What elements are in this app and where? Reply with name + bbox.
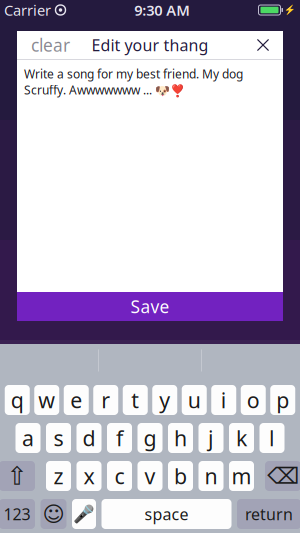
button[interactable]: g — [137, 423, 162, 453]
button[interactable]: b — [168, 461, 193, 491]
button[interactable]: n — [198, 461, 223, 491]
staticText: 🎤 — [73, 504, 95, 524]
button[interactable]: w — [34, 385, 59, 415]
staticText: o — [247, 386, 260, 414]
staticText: d — [82, 424, 95, 452]
button[interactable]: z — [46, 461, 71, 491]
staticText: return — [245, 503, 293, 525]
staticText: 9:30 AM — [134, 0, 190, 20]
staticText: Save — [130, 295, 169, 318]
button[interactable]: y — [152, 385, 177, 415]
button[interactable]: Close — [243, 31, 283, 59]
button[interactable]: 123 — [0, 499, 35, 529]
staticText: z — [53, 462, 63, 490]
staticText: e — [70, 386, 82, 414]
staticText: s — [53, 424, 63, 452]
button[interactable]: p — [270, 385, 295, 415]
staticText: Carrier — [4, 0, 51, 20]
staticText: c — [114, 462, 124, 490]
button[interactable]: s — [46, 423, 71, 453]
staticText: q — [11, 386, 24, 414]
staticText: f — [116, 424, 123, 452]
button[interactable]: o — [241, 385, 266, 415]
staticText: Edit your thang — [91, 34, 208, 56]
button[interactable]: f — [107, 423, 132, 453]
staticText: space — [144, 503, 188, 525]
staticText: v — [144, 462, 155, 490]
staticText: ⌫ — [267, 463, 299, 489]
staticText: y — [159, 386, 170, 414]
staticText: u — [188, 386, 201, 414]
staticText: m — [231, 462, 251, 490]
staticText: p — [276, 386, 289, 414]
button[interactable]: Save — [17, 292, 283, 321]
staticText: ⇧ — [6, 462, 27, 490]
staticText: b — [174, 462, 187, 490]
button[interactable]: x — [76, 461, 101, 491]
staticText: a — [22, 424, 34, 452]
staticText — [51, 0, 55, 20]
staticText: r — [101, 386, 110, 414]
button[interactable]: Shift — [0, 461, 35, 491]
staticText: l — [269, 424, 275, 452]
staticText: 123 — [3, 503, 30, 525]
button[interactable]: k — [229, 423, 254, 453]
staticText: j — [208, 424, 214, 452]
button[interactable]: i — [211, 385, 236, 415]
staticText: n — [204, 462, 217, 490]
staticText: clear — [31, 33, 70, 56]
button[interactable]: c — [107, 461, 132, 491]
staticText: k — [236, 424, 247, 452]
button[interactable]: u — [182, 385, 207, 415]
button[interactable]: space — [101, 499, 231, 529]
button[interactable]: v — [137, 461, 162, 491]
button[interactable]: a — [15, 423, 40, 453]
button[interactable]: d — [76, 423, 101, 453]
staticText: t — [131, 386, 139, 414]
button[interactable]: Dictation — [72, 499, 96, 529]
button[interactable]: return — [237, 499, 300, 529]
staticText: x — [83, 462, 94, 490]
button[interactable]: clear — [17, 31, 84, 59]
button[interactable]: t — [123, 385, 148, 415]
staticText: g — [143, 424, 156, 452]
button[interactable]: m — [229, 461, 254, 491]
staticText: ⚡ — [284, 5, 296, 15]
staticText: i — [221, 386, 227, 414]
staticText: Write a song for my best friend. My dog … — [24, 66, 243, 98]
button[interactable]: q — [5, 385, 30, 415]
staticText: h — [174, 424, 187, 452]
button[interactable]: l — [259, 423, 284, 453]
button[interactable]: r — [93, 385, 118, 415]
staticText: w — [38, 386, 55, 414]
button[interactable]: e — [64, 385, 89, 415]
button[interactable]: h — [168, 423, 193, 453]
button[interactable]: Emoji — [40, 499, 66, 529]
button[interactable]: j — [198, 423, 223, 453]
button[interactable]: Delete — [265, 461, 300, 491]
staticText: ☺ — [42, 502, 64, 526]
